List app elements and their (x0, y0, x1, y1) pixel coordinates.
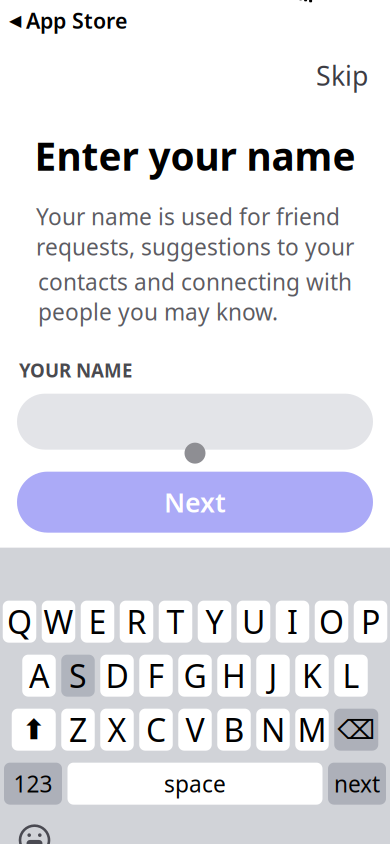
button[interactable]: Emoji keyboard (12, 818, 57, 844)
staticText: X (107, 708, 126, 751)
staticText: F (147, 654, 164, 697)
staticText: R (126, 600, 146, 643)
button[interactable]: D (100, 655, 134, 697)
button[interactable]: O (315, 601, 348, 643)
staticText: YOUR NAME (19, 358, 132, 383)
staticText: G (183, 654, 206, 697)
button[interactable]: space (67, 763, 322, 805)
button[interactable]: Z (61, 709, 95, 751)
staticText: Skip (316, 58, 368, 93)
staticText: J (268, 654, 277, 697)
button[interactable]: 123 (4, 763, 62, 805)
staticText: D (105, 654, 128, 697)
staticText: L (342, 654, 359, 697)
staticText: C (146, 708, 166, 751)
button[interactable]: P (354, 601, 387, 643)
staticText: V (185, 708, 204, 751)
staticText: S (69, 654, 87, 697)
staticText: Z (69, 708, 87, 751)
button[interactable]: H (217, 655, 251, 697)
button[interactable]: W (42, 601, 75, 643)
button[interactable]: K (295, 655, 329, 697)
button[interactable]: B (217, 709, 251, 751)
button[interactable]: ◀ (0, 3, 136, 38)
staticText: A (29, 654, 49, 697)
button[interactable]: S (61, 655, 95, 697)
button[interactable]: L (334, 655, 368, 697)
staticText: Y (205, 600, 223, 643)
staticText: Your name is used for friend requests, s… (36, 201, 354, 262)
button[interactable]: next (328, 763, 386, 805)
staticText: U (242, 600, 265, 643)
button[interactable]: V (178, 709, 212, 751)
staticText: N (261, 708, 285, 751)
button[interactable]: C (139, 709, 173, 751)
button[interactable]: J (256, 655, 290, 697)
staticText: I (287, 600, 298, 643)
staticText: K (302, 654, 322, 697)
staticText: P (361, 600, 380, 643)
button[interactable]: A (22, 655, 56, 697)
staticText: M (297, 708, 326, 751)
staticText: O (319, 600, 344, 643)
staticText: contacts and connecting with people you … (38, 267, 352, 327)
button[interactable]: Delete (334, 709, 378, 751)
button[interactable]: F (139, 655, 173, 697)
staticText: T (166, 600, 184, 643)
staticText: 123 (13, 769, 52, 799)
button[interactable]: Next (17, 472, 373, 533)
staticText: H (222, 654, 246, 697)
button[interactable]: N (256, 709, 290, 751)
button[interactable]: E (81, 601, 114, 643)
staticText: space (164, 769, 226, 799)
staticText: ◀ (9, 11, 21, 30)
button[interactable]: Skip (302, 49, 382, 102)
button[interactable]: Q (3, 601, 36, 643)
staticText: B (223, 708, 244, 751)
button[interactable]: M (295, 709, 329, 751)
staticText: E (88, 600, 106, 643)
button[interactable]: T (159, 601, 192, 643)
button[interactable]: X (100, 709, 134, 751)
staticText: W (43, 600, 73, 643)
button[interactable]: Y (198, 601, 231, 643)
staticText: Enter your name (34, 130, 355, 181)
button[interactable]: I (276, 601, 309, 643)
staticText: App Store (26, 6, 127, 35)
staticText: next (334, 769, 380, 799)
staticText: ⬆ (22, 714, 45, 746)
staticText: ⌫ (337, 714, 375, 745)
button[interactable]: G (178, 655, 212, 697)
button[interactable]: U (237, 601, 270, 643)
staticText: Q (7, 600, 32, 643)
button[interactable]: R (120, 601, 153, 643)
staticText: Next (164, 484, 226, 520)
button[interactable]: Shift (12, 709, 56, 751)
